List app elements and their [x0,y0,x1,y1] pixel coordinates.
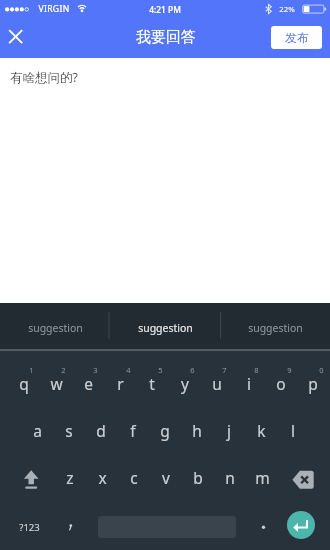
staticText: 5 [158,365,163,375]
staticText: r [117,373,124,394]
button[interactable] [110,303,220,348]
button[interactable] [221,303,330,348]
button[interactable] [12,458,52,498]
button[interactable]: b [182,457,214,497]
staticText: y [181,373,189,394]
staticText: VIRGIN [38,3,70,15]
staticText: f [130,420,136,441]
button[interactable] [284,458,328,498]
button[interactable] [55,506,87,546]
staticText: 我要回答 [136,28,196,47]
staticText: c [130,467,138,488]
button[interactable]: z [54,457,86,497]
staticText: 22% [279,4,295,15]
staticText: s [65,420,73,441]
button[interactable] [247,506,279,546]
staticText: 4:21 PM [149,4,181,15]
button[interactable] [0,303,109,348]
button[interactable]: w [40,363,72,403]
staticText: 6 [190,365,195,375]
button[interactable] [287,511,315,539]
button[interactable]: j [213,410,245,450]
button[interactable]: o [265,363,297,403]
staticText: ?123 [19,521,40,534]
staticText: 9 [287,365,292,375]
staticText: 3 [93,365,98,375]
button[interactable]: d [85,410,117,450]
staticText: l [291,420,295,441]
button[interactable]: v [150,457,182,497]
button[interactable]: m [246,457,278,497]
button[interactable]: p [297,363,329,403]
button[interactable]: t [136,363,168,403]
staticText: t [149,373,155,394]
staticText: v [162,467,170,488]
staticText: 8 [254,365,259,375]
staticText: m [255,467,270,488]
button[interactable]: q [8,363,40,403]
button[interactable]: n [214,457,246,497]
staticText: p [308,373,318,394]
staticText: 0 [319,365,324,375]
button[interactable] [0,58,330,303]
staticText: k [257,420,266,441]
button[interactable]: y [169,363,201,403]
button[interactable]: i [233,363,265,403]
staticText: g [160,420,170,441]
button[interactable]: r [104,363,136,403]
button[interactable]: g [149,410,181,450]
staticText: 4 [126,365,131,375]
button[interactable]: f [117,410,149,450]
staticText: 2 [61,365,66,375]
staticText: 发布 [285,30,309,45]
staticText: q [19,373,29,394]
button[interactable]: s [53,410,85,450]
staticText: i [247,373,251,394]
button[interactable]: h [181,410,213,450]
button[interactable]: a [21,410,53,450]
button[interactable]: c [118,457,150,497]
button[interactable]: k [245,410,277,450]
staticText: 7 [222,365,227,375]
staticText: suggestion [28,321,83,335]
button[interactable]: x [86,457,118,497]
staticText: b [193,467,203,488]
staticText: suggestion [248,321,303,335]
staticText: 有啥想问的? [10,69,78,86]
button[interactable]: u [201,363,233,403]
button[interactable]: 发布 [271,26,322,49]
staticText: e [84,373,93,394]
staticText: suggestion [138,321,193,335]
staticText: 1 [29,365,34,375]
staticText: n [225,467,235,488]
staticText: h [192,420,202,441]
staticText: j [227,420,231,441]
button[interactable]: ?123 [6,507,52,547]
staticText: u [212,373,222,394]
staticText: x [98,467,107,488]
button[interactable]: l [277,410,309,450]
staticText: w [50,373,63,394]
staticText: z [66,467,74,488]
staticText: o [276,373,286,394]
button[interactable]: e [72,363,104,403]
button[interactable] [3,25,29,49]
staticText: d [96,420,106,441]
staticText: a [33,420,42,441]
